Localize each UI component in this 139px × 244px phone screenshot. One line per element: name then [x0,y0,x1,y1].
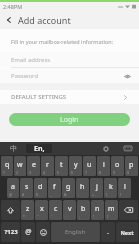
button[interactable]: n [91,200,104,220]
staticText: ( [106,192,108,197]
button[interactable]: q [1,156,13,176]
button[interactable]: English [51,222,100,242]
button[interactable]: Login [9,113,130,126]
button[interactable]: . [101,222,115,242]
button[interactable]: y [69,156,82,176]
staticText: " [37,214,39,219]
staticText: n [95,204,100,214]
staticText: 0 [127,170,130,175]
staticText: w [17,160,23,170]
button[interactable]: Emoji [36,222,50,242]
staticText: ; [79,214,80,219]
button[interactable]: t [55,156,68,176]
button[interactable]: r [41,156,54,176]
staticText: _ [50,192,52,197]
button[interactable]: v [63,200,76,220]
staticText: m [108,204,115,214]
staticText: Next [120,229,134,236]
button[interactable]: En, [26,144,52,153]
staticText: En, [34,144,45,153]
button[interactable]: w [14,156,26,176]
staticText: 4 [43,170,46,175]
button[interactable]: Back [0,11,18,29]
staticText: @ [9,192,13,197]
button[interactable]: Settings [95,142,117,155]
staticText: 2:48PM [3,3,23,10]
staticText: l [124,182,126,192]
staticText: d [38,182,43,192]
staticText: t [60,160,63,170]
button[interactable]: u [83,156,96,176]
button[interactable]: @ [21,222,35,242]
staticText: Add account [18,14,71,26]
button[interactable]: Backspace [119,200,138,220]
staticText: & [64,192,67,197]
staticText: 中 [10,144,17,153]
button[interactable]: d [34,178,47,198]
staticText: 9 [113,170,116,175]
button[interactable]: Hide keyboard [117,142,139,155]
staticText: v [68,204,72,214]
button[interactable]: i [97,156,110,176]
staticText: c [54,204,58,214]
staticText: z [26,204,30,214]
staticText: @ [25,227,32,237]
button[interactable]: m [105,200,118,220]
button[interactable]: b [77,200,90,220]
staticText: g [66,182,71,192]
button[interactable]: p [125,156,138,176]
button[interactable]: j [90,178,103,198]
staticText: e [32,160,36,170]
staticText: q [5,160,10,170]
staticText: 1 [3,170,6,175]
button[interactable]: o [111,156,124,176]
staticText: $ [36,192,39,197]
staticText: b [81,204,86,214]
staticText: English [65,228,86,236]
staticText: Fill in your mailbox-related information… [11,38,114,45]
staticText: 2 [16,170,19,175]
staticText: k [109,182,113,192]
staticText: r [46,160,49,170]
button[interactable]: g [62,178,75,198]
button[interactable]: c [49,200,62,220]
staticText: y [74,160,78,170]
button[interactable]: z [21,200,34,220]
staticText: 7 [85,170,88,175]
staticText: o [115,160,120,170]
staticText: ! [93,214,94,219]
button[interactable]: x [35,200,48,220]
button[interactable]: s [20,178,33,198]
staticText: ' [51,214,52,219]
button[interactable]: Email address [0,52,139,67]
button[interactable]: l [118,178,131,198]
staticText: 5 [57,170,60,175]
staticText: x [40,204,44,214]
staticText: p [129,160,134,170]
staticText: # [22,192,25,197]
staticText: ?123 [4,228,18,236]
button[interactable]: h [76,178,89,198]
staticText: Password [11,72,121,80]
button[interactable]: Password [0,68,139,83]
staticText: j [96,182,98,192]
staticText: f [53,182,56,192]
staticText: a [11,182,15,192]
button[interactable]: e [27,156,40,176]
staticText: Email address [11,56,133,64]
button[interactable]: Shift [1,200,20,220]
button[interactable]: a [7,178,19,198]
button[interactable]: DEFAULT SETTINGS [0,90,139,104]
staticText: h [80,182,85,192]
staticText: Login [60,115,79,125]
button[interactable]: ?123 [1,222,20,242]
button[interactable]: Next [116,222,138,242]
button[interactable]: k [104,178,117,198]
staticText: + [92,192,95,197]
staticText: - [78,192,80,197]
staticText: DEFAULT SETTINGS [11,93,123,101]
button[interactable]: f [48,178,61,198]
button[interactable]: Chinese input [0,142,26,155]
staticText: . [107,227,109,237]
button[interactable]: Show password [121,70,133,82]
